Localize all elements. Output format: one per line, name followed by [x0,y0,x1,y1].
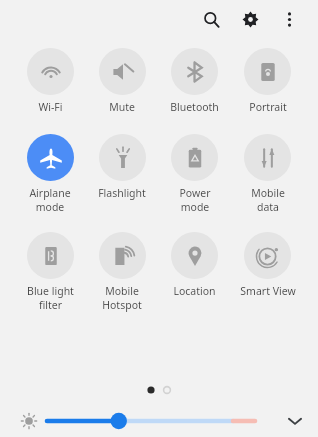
staticText: Portrait [249,100,287,114]
button[interactable]: Brightness slider [46,408,276,434]
staticText: Mute [109,100,135,114]
staticText: Airplane mode [29,186,71,214]
button[interactable]: Location [158,232,231,298]
button[interactable]: Power mode [158,134,231,214]
button[interactable]: Blue light filter [14,232,86,312]
staticText: Blue light filter [27,284,74,312]
staticText: Location [173,284,216,298]
staticText: Wi-Fi [38,100,63,114]
button[interactable]: Search [196,4,226,34]
button[interactable]: Portrait [231,48,304,114]
staticText: Mobile data [251,186,285,214]
button[interactable]: Expand [280,406,310,436]
staticText: Power mode [179,186,211,214]
button[interactable]: Mobile Hotspot [86,232,158,312]
button[interactable]: Airplane mode [14,134,86,214]
button[interactable]: Smart View [231,232,304,298]
button[interactable]: Settings [235,4,265,34]
button[interactable]: Mobile data [231,134,304,214]
button[interactable]: Wi-Fi [14,48,86,114]
staticText: Smart View [240,284,296,298]
button[interactable]: Bluetooth [158,48,231,114]
button[interactable]: Flashlight [86,134,158,200]
staticText: Mobile Hotspot [102,284,142,312]
staticText: Flashlight [98,186,146,200]
button[interactable]: Auto brightness [18,410,40,432]
button[interactable]: Mute [86,48,158,114]
staticText: Bluetooth [170,100,219,114]
button[interactable]: More options [274,4,304,34]
